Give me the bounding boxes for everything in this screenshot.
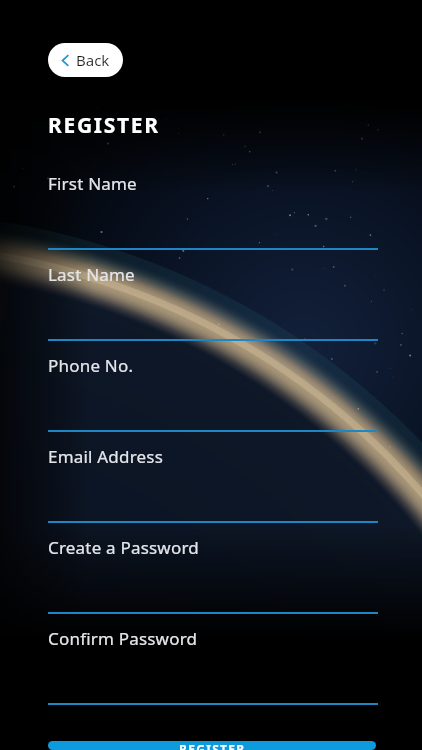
staticText: REGISTER bbox=[179, 741, 246, 750]
staticText: Email Address bbox=[48, 445, 164, 468]
button[interactable]: Email Address bbox=[0, 433, 422, 524]
button[interactable]: Back bbox=[48, 43, 123, 77]
staticText: REGISTER bbox=[48, 111, 160, 140]
button[interactable]: REGISTER bbox=[48, 741, 376, 750]
button[interactable]: Last Name bbox=[0, 251, 422, 342]
button[interactable]: Create a Password bbox=[0, 524, 422, 615]
staticText: First Name bbox=[48, 172, 137, 195]
staticText: Last Name bbox=[48, 263, 135, 286]
staticText: Create a Password bbox=[48, 536, 199, 559]
staticText: Confirm Password bbox=[48, 627, 198, 650]
button[interactable]: First Name bbox=[0, 160, 422, 251]
staticText: Phone No. bbox=[48, 354, 134, 377]
button[interactable]: Confirm Password bbox=[0, 615, 422, 706]
button[interactable]: Phone No. bbox=[0, 342, 422, 433]
staticText: Back bbox=[76, 50, 110, 70]
